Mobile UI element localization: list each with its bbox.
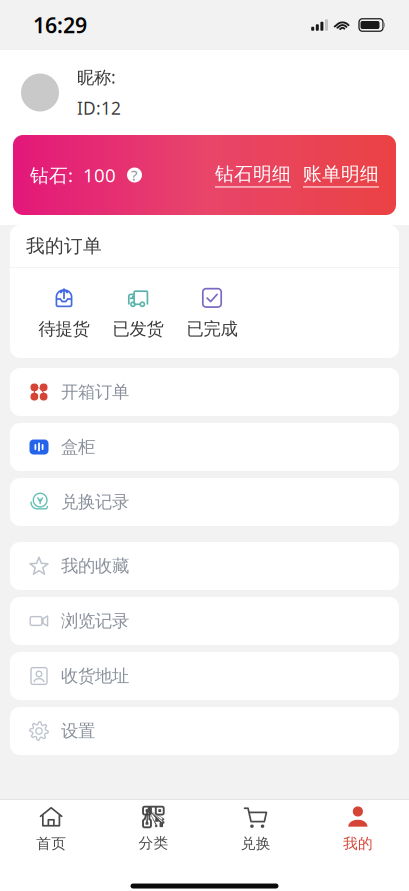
staticText: 兑换 bbox=[241, 834, 271, 852]
staticText: 分类 bbox=[138, 834, 168, 852]
staticText: 我的收藏 bbox=[61, 555, 129, 577]
staticText: 开箱订单 bbox=[61, 381, 129, 403]
button[interactable]: 盒柜 bbox=[0, 423, 409, 471]
staticText: ? bbox=[131, 165, 138, 185]
staticText: 待提货 bbox=[38, 318, 89, 340]
button[interactable]: 已完成 bbox=[175, 270, 249, 355]
button[interactable]: 钻石明细 bbox=[215, 162, 291, 187]
button[interactable]: 兑换 bbox=[204, 800, 307, 858]
staticText: 首页 bbox=[36, 834, 66, 852]
staticText: 已发货 bbox=[112, 318, 163, 340]
staticText: 昵称: bbox=[77, 65, 116, 88]
button[interactable]: 兑换记录 bbox=[0, 478, 409, 526]
staticText: 我的 bbox=[343, 834, 373, 852]
staticText: 钻石明细 bbox=[215, 162, 291, 185]
button[interactable]: 首页 bbox=[0, 800, 102, 858]
button[interactable]: 开箱订单 bbox=[0, 368, 409, 416]
staticText: 我的订单 bbox=[26, 234, 102, 257]
button[interactable]: 浏览记录 bbox=[0, 597, 409, 645]
button[interactable]: 设置 bbox=[0, 707, 409, 755]
staticText: 钻石: bbox=[30, 163, 73, 187]
staticText: 设置 bbox=[61, 720, 95, 742]
staticText: ID:12 bbox=[77, 96, 121, 119]
staticText: 收货地址 bbox=[61, 665, 129, 687]
button[interactable]: 分类 bbox=[102, 800, 204, 858]
button[interactable]: 账单明细 bbox=[303, 162, 379, 187]
staticText: 已完成 bbox=[186, 318, 237, 340]
button[interactable]: 待提货 bbox=[27, 270, 101, 355]
staticText: 账单明细 bbox=[303, 162, 379, 185]
staticText: 兑换记录 bbox=[61, 491, 129, 513]
staticText: 盒柜 bbox=[61, 436, 95, 458]
button[interactable]: 我的收藏 bbox=[0, 542, 409, 590]
button[interactable]: 已发货 bbox=[101, 270, 175, 355]
staticText: 16:29 bbox=[33, 11, 87, 39]
button[interactable]: 我的 bbox=[307, 800, 409, 858]
staticText: 100 bbox=[73, 163, 116, 187]
button[interactable]: 收货地址 bbox=[0, 652, 409, 700]
staticText: 浏览记录 bbox=[61, 610, 129, 632]
